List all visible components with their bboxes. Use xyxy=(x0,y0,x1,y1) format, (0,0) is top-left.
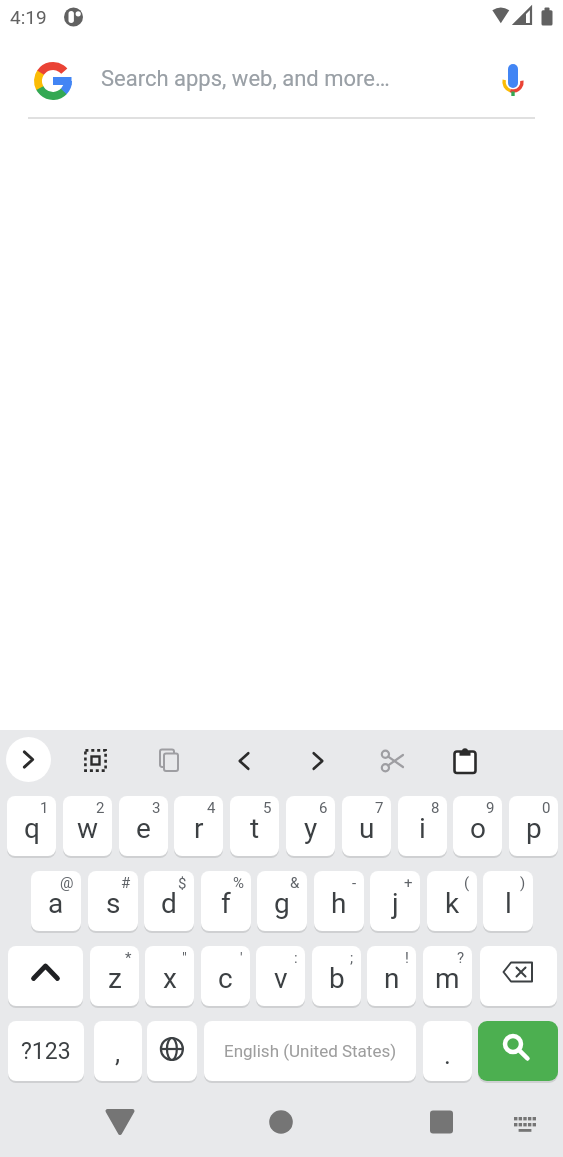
button[interactable] xyxy=(96,1098,144,1146)
button[interactable] xyxy=(232,749,256,773)
staticText: # xyxy=(121,874,131,892)
button[interactable]: t xyxy=(230,796,279,856)
button[interactable]: o xyxy=(453,796,502,856)
staticText: ' xyxy=(240,949,243,967)
button[interactable] xyxy=(380,749,404,773)
button[interactable]: n xyxy=(367,946,416,1006)
button[interactable]: c xyxy=(201,946,250,1006)
button[interactable]: l xyxy=(483,871,533,931)
button[interactable]: i xyxy=(398,796,447,856)
button[interactable]: s xyxy=(88,871,138,931)
staticText: n xyxy=(384,962,400,995)
staticText: k xyxy=(445,887,460,920)
button[interactable] xyxy=(480,946,557,1006)
button[interactable]: q xyxy=(7,796,56,856)
button[interactable]: v xyxy=(256,946,305,1006)
staticText: e xyxy=(136,812,151,845)
staticText: a xyxy=(48,887,64,920)
button[interactable]: f xyxy=(201,871,251,931)
staticText: + xyxy=(404,874,413,892)
button[interactable] xyxy=(418,1098,466,1146)
staticText: ? xyxy=(457,949,465,967)
staticText: 6 xyxy=(319,799,328,817)
button[interactable] xyxy=(147,1021,197,1081)
staticText: Search apps, web, and more… xyxy=(101,66,390,92)
button[interactable]: g xyxy=(257,871,307,931)
button[interactable]: ?123 xyxy=(8,1021,84,1081)
staticText: q xyxy=(24,812,40,845)
staticText: ; xyxy=(350,949,354,967)
staticText: 9 xyxy=(486,799,495,817)
staticText: j xyxy=(392,887,399,920)
staticText: t xyxy=(250,812,260,845)
button[interactable]: Search apps, web, and more… xyxy=(0,40,563,118)
button[interactable] xyxy=(8,946,83,1006)
staticText: 1 xyxy=(40,799,49,817)
staticText: 3 xyxy=(152,799,161,817)
staticText: f xyxy=(221,887,231,920)
staticText: % xyxy=(233,874,244,892)
staticText: l xyxy=(505,887,512,920)
button[interactable]: k xyxy=(427,871,477,931)
button[interactable] xyxy=(257,1098,305,1146)
button[interactable]: r xyxy=(174,796,223,856)
button[interactable]: u xyxy=(342,796,391,856)
staticText: 0 xyxy=(542,799,551,817)
staticText: : xyxy=(294,949,298,967)
button[interactable]: English (United States) xyxy=(204,1021,416,1081)
staticText: $ xyxy=(178,874,187,892)
staticText: c xyxy=(218,962,233,995)
button[interactable]: j xyxy=(370,871,420,931)
staticText: - xyxy=(352,874,357,892)
staticText: ) xyxy=(520,874,526,892)
button[interactable] xyxy=(158,748,182,774)
staticText: s xyxy=(106,887,121,920)
staticText: h xyxy=(331,887,347,920)
staticText: . xyxy=(444,1040,451,1070)
button[interactable]: p xyxy=(509,796,558,856)
staticText: b xyxy=(329,962,345,995)
button[interactable] xyxy=(6,737,51,782)
button[interactable] xyxy=(84,749,108,773)
staticText: ?123 xyxy=(21,1038,71,1065)
button[interactable]: h xyxy=(314,871,364,931)
staticText: m xyxy=(435,962,460,995)
staticText: g xyxy=(274,887,290,920)
button[interactable]: , xyxy=(94,1021,142,1081)
staticText: , xyxy=(115,1038,121,1068)
staticText: 4 xyxy=(207,799,216,817)
button[interactable] xyxy=(500,60,526,98)
button[interactable]: e xyxy=(119,796,168,856)
staticText: i xyxy=(419,812,426,845)
staticText: * xyxy=(125,949,132,967)
button[interactable] xyxy=(478,1021,558,1081)
button[interactable] xyxy=(306,749,330,773)
button[interactable] xyxy=(453,748,477,774)
staticText: English (United States) xyxy=(224,1041,397,1061)
button[interactable]: z xyxy=(90,946,139,1006)
button[interactable]: x xyxy=(145,946,194,1006)
staticText: r xyxy=(194,812,204,845)
staticText: 2 xyxy=(96,799,105,817)
staticText: v xyxy=(274,962,288,995)
staticText: 5 xyxy=(263,799,272,817)
staticText: 4:19 xyxy=(10,6,47,28)
button[interactable]: b xyxy=(312,946,361,1006)
staticText: & xyxy=(290,874,300,892)
button[interactable]: . xyxy=(423,1021,472,1081)
staticText: w xyxy=(77,812,99,845)
button[interactable] xyxy=(508,1108,542,1138)
staticText: 8 xyxy=(431,799,440,817)
staticText: p xyxy=(526,812,542,845)
staticText: " xyxy=(182,949,187,967)
button[interactable]: m xyxy=(423,946,472,1006)
button[interactable]: w xyxy=(63,796,112,856)
staticText: o xyxy=(470,812,486,845)
button[interactable]: d xyxy=(144,871,194,931)
staticText: ! xyxy=(405,949,409,967)
button[interactable]: a xyxy=(31,871,81,931)
staticText: x xyxy=(163,962,177,995)
button[interactable]: y xyxy=(286,796,335,856)
staticText: @ xyxy=(60,874,74,892)
staticText: d xyxy=(161,887,177,920)
